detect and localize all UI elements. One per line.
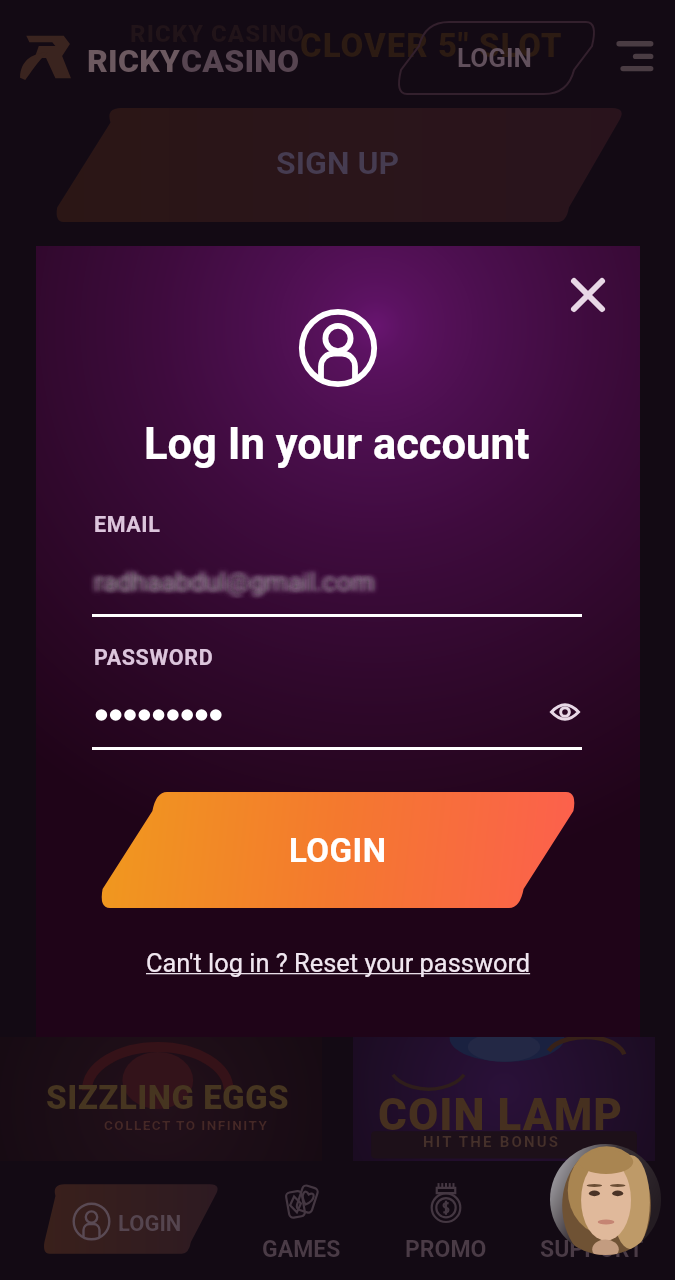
staticText: radhaabdul@gmail.com <box>101 566 382 597</box>
staticText: radhaabdul@gmail.com <box>103 563 384 594</box>
staticText: radhaabdul@gmail.com <box>99 563 380 594</box>
staticText: GAMES <box>262 1236 341 1263</box>
staticText: radhaabdul@gmail.com <box>89 570 370 601</box>
staticText: radhaabdul@gmail.com <box>94 568 375 599</box>
staticText: RICKY <box>87 42 181 80</box>
staticText: radhaabdul@gmail.com <box>87 563 368 594</box>
staticText: radhaabdul@gmail.com <box>93 567 374 598</box>
staticText: CLOVER 5" SLOT <box>300 26 563 65</box>
staticText: radhaabdul@gmail.com <box>86 565 367 596</box>
staticText: radhaabdul@gmail.com <box>101 570 382 601</box>
staticText: radhaabdul@gmail.com <box>88 571 369 602</box>
button[interactable]: Can't log in ? Reset your password <box>146 948 531 978</box>
staticText: radhaabdul@gmail.com <box>98 563 379 594</box>
staticText: radhaabdul@gmail.com <box>88 562 369 593</box>
button[interactable]: SIZZLING EGGS <box>0 1037 322 1161</box>
staticText: radhaabdul@gmail.com <box>99 560 380 591</box>
button[interactable]: Support chat <box>550 1144 661 1255</box>
staticText: radhaabdul@gmail.com <box>95 565 376 596</box>
staticText: radhaabdul@gmail.com <box>95 570 376 601</box>
staticText: radhaabdul@gmail.com <box>94 570 375 601</box>
staticText: radhaabdul@gmail.com <box>97 562 378 593</box>
staticText: radhaabdul@gmail.com <box>100 572 381 603</box>
staticText: radhaabdul@gmail.com <box>93 565 374 596</box>
staticText: radhaabdul@gmail.com <box>90 561 371 592</box>
staticText: radhaabdul@gmail.com <box>100 562 381 593</box>
staticText: radhaabdul@gmail.com <box>86 571 367 602</box>
staticText: radhaabdul@gmail.com <box>92 568 373 599</box>
staticText: radhaabdul@gmail.com <box>94 567 375 598</box>
staticText: radhaabdul@gmail.com <box>103 567 384 598</box>
staticText: radhaabdul@gmail.com <box>91 562 372 593</box>
staticText: radhaabdul@gmail.com <box>96 569 377 600</box>
button[interactable]: SIGN UP <box>0 108 675 222</box>
button[interactable]: LOGIN <box>40 1182 222 1256</box>
staticText: radhaabdul@gmail.com <box>87 567 368 598</box>
staticText: CASINO <box>181 42 300 80</box>
button[interactable]: PROMO <box>386 1176 506 1260</box>
staticText: radhaabdul@gmail.com <box>101 568 382 599</box>
button[interactable]: Close <box>560 267 616 323</box>
staticText: radhaabdul@gmail.com <box>97 559 378 590</box>
staticText: radhaabdul@gmail.com <box>90 563 371 594</box>
staticText: radhaabdul@gmail.com <box>102 566 383 597</box>
staticText: radhaabdul@gmail.com <box>96 564 377 595</box>
staticText: radhaabdul@gmail.com <box>99 570 380 601</box>
staticText: SUPPORT <box>540 1236 644 1263</box>
staticText: radhaabdul@gmail.com <box>85 570 366 601</box>
staticText: COIN LAMP <box>378 1089 623 1141</box>
staticText: PROMO <box>405 1236 487 1263</box>
staticText: radhaabdul@gmail.com <box>88 565 369 596</box>
staticText: radhaabdul@gmail.com <box>91 563 372 594</box>
staticText: radhaabdul@gmail.com <box>92 567 373 598</box>
staticText: radhaabdul@gmail.com <box>98 570 379 601</box>
staticText: radhaabdul@gmail.com <box>90 569 371 600</box>
staticText: radhaabdul@gmail.com <box>96 561 377 592</box>
staticText: EMAIL <box>94 512 161 537</box>
staticText: radhaabdul@gmail.com <box>94 563 375 594</box>
staticText: radhaabdul@gmail.com <box>98 569 379 600</box>
staticText: radhaabdul@gmail.com <box>97 570 378 601</box>
button[interactable]: Show password <box>544 691 586 733</box>
staticText: radhaabdul@gmail.com <box>90 559 371 590</box>
button[interactable]: COIN LAMP <box>353 1037 655 1161</box>
staticText: radhaabdul@gmail.com <box>97 564 378 595</box>
staticText: radhaabdul@gmail.com <box>96 562 377 593</box>
staticText: radhaabdul@gmail.com <box>96 565 377 596</box>
staticText: COLLECT TO INFINITY <box>104 1117 269 1133</box>
staticText: radhaabdul@gmail.com <box>92 572 373 603</box>
staticText: radhaabdul@gmail.com <box>102 568 383 599</box>
staticText: radhaabdul@gmail.com <box>95 564 376 595</box>
staticText: radhaabdul@gmail.com <box>97 560 378 591</box>
staticText: radhaabdul@gmail.com <box>89 567 370 598</box>
staticText: radhaabdul@gmail.com <box>92 571 373 602</box>
staticText: radhaabdul@gmail.com <box>86 566 367 597</box>
staticText: radhaabdul@gmail.com <box>98 561 379 592</box>
button[interactable]: GAMES <box>241 1176 361 1260</box>
staticText: radhaabdul@gmail.com <box>94 560 375 591</box>
staticText: radhaabdul@gmail.com <box>103 565 384 596</box>
staticText: radhaabdul@gmail.com <box>94 569 375 600</box>
staticText: radhaabdul@gmail.com <box>85 563 366 594</box>
button[interactable]: LOGIN <box>99 792 577 908</box>
staticText: radhaabdul@gmail.com <box>102 562 383 593</box>
staticText: radhaabdul@gmail.com <box>93 562 374 593</box>
staticText: radhaabdul@gmail.com <box>88 564 369 595</box>
button[interactable]: Menu <box>610 36 662 78</box>
staticText: radhaabdul@gmail.com <box>100 563 381 594</box>
staticText: radhaabdul@gmail.com <box>97 573 378 604</box>
staticText: radhaabdul@gmail.com <box>90 567 371 598</box>
staticText: radhaabdul@gmail.com <box>87 570 368 601</box>
staticText: radhaabdul@gmail.com <box>96 570 377 601</box>
staticText: Log In your account <box>144 419 530 470</box>
staticText: radhaabdul@gmail.com <box>92 570 373 601</box>
staticText: radhaabdul@gmail.com <box>91 560 372 591</box>
staticText: radhaabdul@gmail.com <box>97 572 378 603</box>
staticText: radhaabdul@gmail.com <box>88 566 369 597</box>
staticText: radhaabdul@gmail.com <box>86 570 367 601</box>
button[interactable]: SUPPORT <box>532 1176 652 1260</box>
staticText: radhaabdul@gmail.com <box>99 565 380 596</box>
staticText: radhaabdul@gmail.com <box>101 569 382 600</box>
button[interactable]: LOGIN <box>395 22 598 94</box>
staticText: radhaabdul@gmail.com <box>97 569 378 600</box>
